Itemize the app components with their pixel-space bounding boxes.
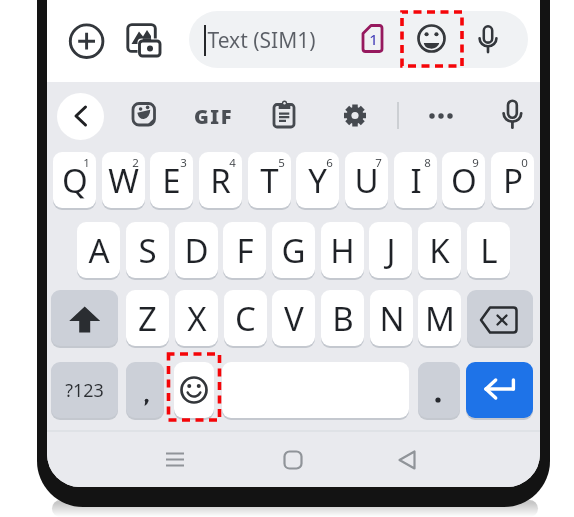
button[interactable]: B [321, 290, 364, 346]
button[interactable]: V [272, 290, 315, 346]
button[interactable] [129, 99, 159, 129]
staticText: X [187, 296, 207, 341]
button[interactable]: O [442, 152, 485, 208]
button[interactable]: D [175, 222, 218, 278]
staticText: D [184, 228, 209, 273]
staticText: R [210, 158, 231, 203]
button[interactable]: GIF [187, 103, 239, 124]
staticText: Y [308, 158, 327, 203]
staticText: ?123 [65, 378, 104, 403]
button[interactable]: L [467, 222, 510, 278]
staticText: Q [62, 158, 88, 203]
button[interactable] [269, 97, 299, 130]
button[interactable]: ?123 [51, 362, 118, 418]
staticText: 0 [521, 155, 528, 171]
staticText: M [425, 296, 455, 341]
staticText: N [379, 296, 405, 341]
button[interactable]: J [369, 222, 412, 278]
staticText: C [235, 296, 256, 341]
staticText: 5 [278, 155, 285, 171]
button[interactable] [497, 99, 528, 131]
button[interactable] [126, 362, 164, 418]
staticText: 6 [326, 155, 333, 171]
staticText: V [284, 296, 304, 341]
button[interactable] [415, 22, 448, 55]
button[interactable]: H [321, 222, 364, 278]
staticText: H [330, 228, 355, 273]
button[interactable] [466, 362, 533, 418]
button[interactable]: S [126, 222, 169, 278]
staticText: 1 [369, 29, 378, 48]
staticText: J [386, 228, 396, 273]
button[interactable]: C [224, 290, 267, 346]
button[interactable]: K [418, 222, 461, 278]
button[interactable] [472, 22, 504, 58]
button[interactable] [189, 11, 528, 68]
staticText: P [503, 158, 523, 203]
staticText: 4 [229, 155, 236, 171]
button[interactable]: Q [53, 152, 96, 208]
staticText: O [451, 158, 477, 203]
staticText: 7 [375, 155, 382, 171]
staticText: 2 [132, 155, 139, 171]
button[interactable]: P [491, 152, 534, 208]
button[interactable]: Z [126, 290, 169, 346]
staticText: 1 [83, 155, 90, 171]
button[interactable] [51, 290, 118, 346]
button[interactable]: A [77, 222, 120, 278]
button[interactable]: X [175, 290, 218, 346]
button[interactable] [418, 362, 460, 418]
button[interactable] [123, 22, 161, 58]
staticText: K [429, 228, 450, 273]
staticText: 9 [472, 155, 479, 171]
staticText: W [108, 158, 139, 203]
staticText: E [162, 158, 181, 203]
button[interactable] [426, 101, 456, 131]
staticText: Z [138, 296, 157, 341]
staticText: GIF [194, 103, 233, 124]
staticText: Text (SIM1) [207, 26, 316, 55]
button[interactable] [69, 24, 103, 58]
button[interactable] [174, 362, 214, 418]
button[interactable]: T [248, 152, 291, 208]
staticText: F [236, 228, 254, 273]
button[interactable] [270, 444, 316, 476]
staticText: S [138, 228, 157, 273]
button[interactable]: M [418, 290, 461, 346]
staticText: A [88, 228, 110, 273]
button[interactable]: N [370, 290, 413, 346]
button[interactable] [340, 100, 370, 131]
button[interactable]: G [272, 222, 315, 278]
button[interactable]: F [223, 222, 266, 278]
staticText: 8 [424, 155, 431, 171]
button[interactable]: Y [296, 152, 339, 208]
button[interactable]: W [102, 152, 145, 208]
staticText: L [480, 228, 498, 273]
button[interactable]: I [394, 152, 437, 208]
button[interactable] [384, 444, 430, 476]
staticText: B [332, 296, 354, 341]
staticText: T [260, 158, 279, 203]
button[interactable]: U [345, 152, 388, 208]
staticText: 3 [180, 155, 187, 171]
button[interactable] [151, 444, 197, 476]
staticText: I [410, 158, 422, 203]
button[interactable] [57, 93, 104, 140]
button[interactable]: R [199, 152, 242, 208]
staticText: G [281, 228, 306, 273]
staticText: U [354, 158, 379, 203]
button[interactable] [467, 290, 533, 346]
button[interactable]: E [150, 152, 193, 208]
